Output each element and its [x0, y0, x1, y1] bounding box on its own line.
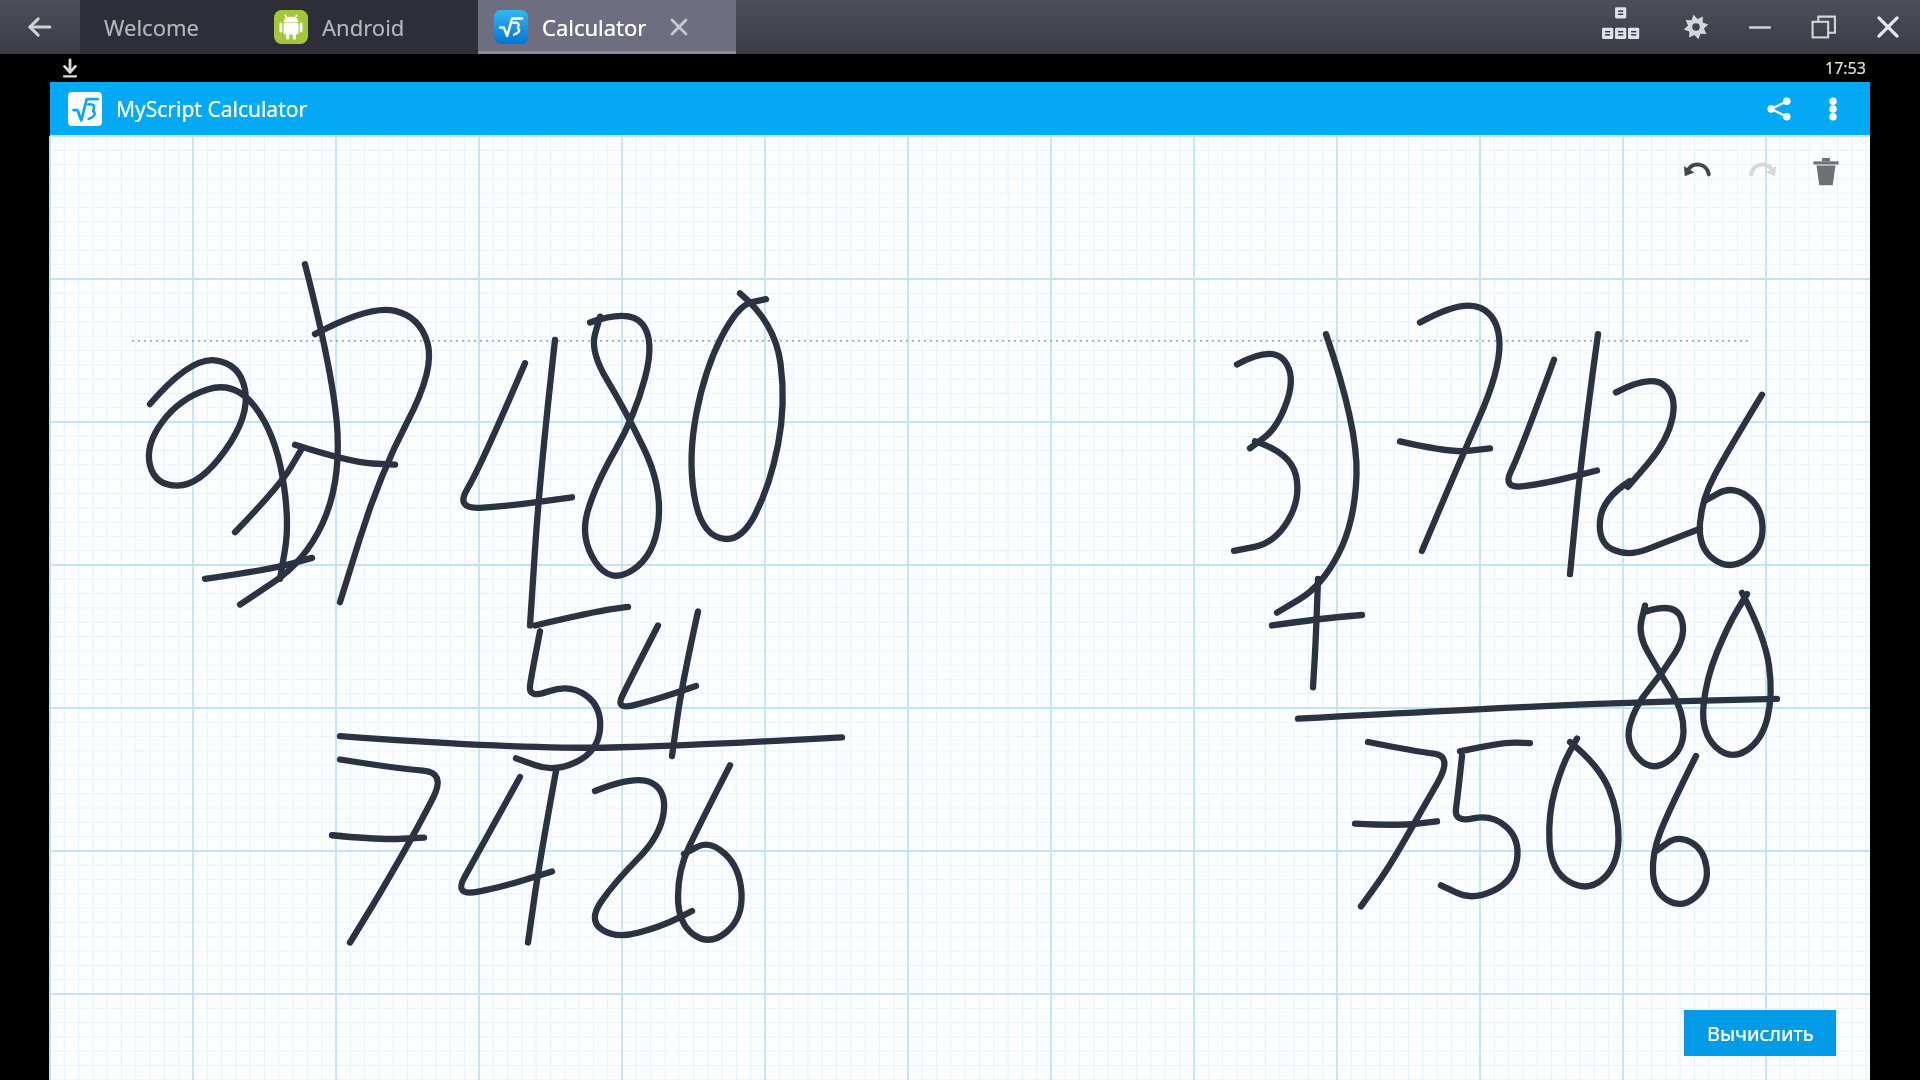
staticText: 17:53: [1825, 57, 1866, 79]
other: Download: [60, 58, 80, 78]
button[interactable]: Close: [1856, 0, 1920, 54]
button[interactable]: Вычислить: [1684, 1010, 1836, 1056]
button[interactable]: Close tab: [663, 11, 695, 43]
button[interactable]: Settings: [1664, 0, 1728, 54]
staticText: Welcome: [104, 12, 199, 42]
button[interactable]: Keymap WASD: [1590, 0, 1664, 54]
staticText: Вычислить: [1707, 1020, 1814, 1047]
button[interactable]: Minimize: [1728, 0, 1792, 54]
staticText: Calculator: [542, 12, 647, 42]
staticText: Android: [322, 12, 405, 42]
button[interactable]: Welcome: [80, 0, 258, 54]
button[interactable]: Undo: [1666, 140, 1730, 204]
button[interactable]: Redo: [1730, 140, 1794, 204]
button[interactable]: Share: [1750, 82, 1808, 136]
button[interactable]: Clear: [1794, 140, 1858, 204]
button[interactable]: Android: [258, 0, 478, 54]
button[interactable]: Back: [0, 0, 80, 54]
button[interactable]: Restore: [1792, 0, 1856, 54]
staticText: MyScript Calculator: [116, 95, 308, 124]
button[interactable]: Calculator: [478, 0, 736, 54]
button[interactable]: More options: [1808, 84, 1858, 134]
